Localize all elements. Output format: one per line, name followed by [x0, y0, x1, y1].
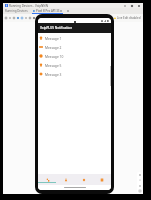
button[interactable]: Toolbar action 4	[16, 14, 20, 22]
button[interactable]: Message 1	[38, 33, 111, 42]
button[interactable]: Minimize	[121, 3, 128, 8]
staticText: Message 1	[45, 36, 62, 40]
staticText: Live Edit disabled	[117, 16, 141, 20]
button[interactable]: Live Edit disabled	[113, 16, 142, 20]
button[interactable]: Toolbar action 10	[40, 14, 44, 22]
staticText: Running Devices	[5, 9, 28, 13]
staticText: Running Devices - VoipNNN	[9, 4, 48, 8]
button[interactable]: Close	[135, 3, 142, 8]
button[interactable]: Toolbar action 5	[20, 14, 24, 22]
button[interactable]: Toolbar action 15	[60, 14, 64, 22]
button[interactable]: Add device	[66, 9, 70, 13]
button[interactable]: Panel action 4	[138, 189, 142, 193]
button[interactable]: Messages	[75, 174, 93, 185]
button[interactable]: Search	[107, 16, 112, 21]
button[interactable]: Panel action 3	[138, 184, 142, 188]
button[interactable]: Settings	[93, 174, 111, 185]
button[interactable]: Toolbar action 8	[32, 14, 36, 22]
button[interactable]: Toolbar action 2	[8, 14, 12, 22]
button[interactable]: Message 10	[38, 51, 111, 60]
staticText: VoipPLUS Notification	[40, 26, 73, 30]
button[interactable]: Toolbar action 14	[56, 14, 60, 22]
button[interactable]: Maximize	[128, 3, 135, 8]
button[interactable]: Toolbar action 6	[24, 14, 28, 22]
button[interactable]: Toolbar action 12	[48, 14, 52, 22]
button[interactable]: Running Devices	[3, 8, 30, 14]
staticText: Message 3	[45, 72, 62, 76]
button[interactable]: Calls	[38, 174, 57, 185]
button[interactable]: Panel action 2	[138, 178, 142, 182]
staticText: Message 5	[45, 63, 62, 67]
button[interactable]: Toolbar action 11	[44, 14, 48, 22]
button[interactable]: Toolbar action 1	[4, 14, 8, 22]
button[interactable]: Pixel 8 Pro API 33	[32, 8, 63, 14]
button[interactable]: Message 3	[38, 69, 111, 78]
button[interactable]: Panel action 1	[138, 173, 142, 177]
button[interactable]: Toolbar action 7	[28, 14, 32, 22]
staticText: Message 10	[45, 54, 64, 58]
button[interactable]: Contacts	[57, 174, 75, 185]
button[interactable]: Toolbar action 13	[52, 14, 56, 22]
button[interactable]: Toolbar action 3	[12, 14, 16, 22]
staticText: Message 2	[45, 45, 62, 49]
button[interactable]: Message 2	[38, 42, 111, 51]
staticText: Pixel 8 Pro API 33	[36, 9, 60, 13]
button[interactable]: Message 5	[38, 60, 111, 69]
button[interactable]: Toolbar action 9	[36, 14, 40, 22]
